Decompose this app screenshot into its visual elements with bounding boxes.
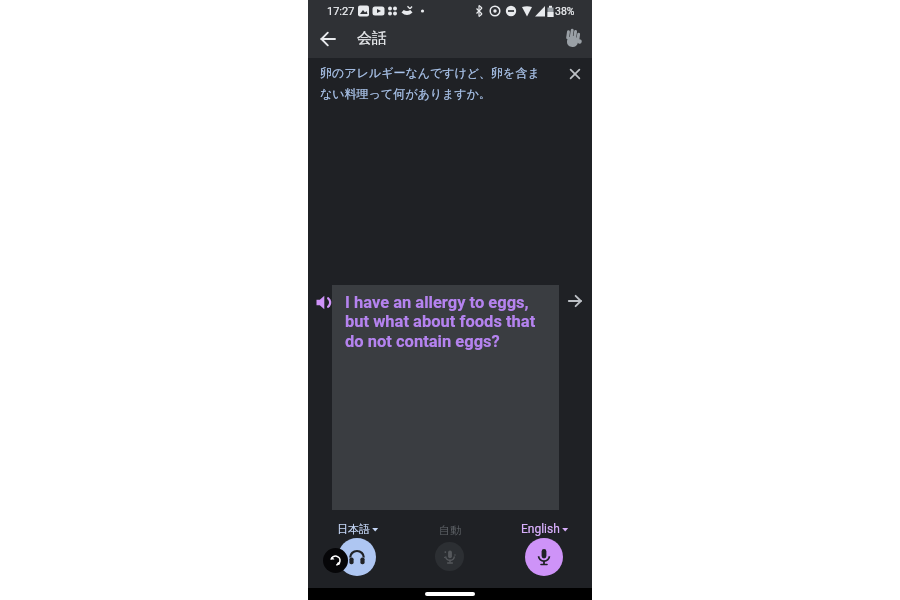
- button[interactable]: 日本語: [336, 521, 380, 537]
- staticText: 会話: [357, 29, 387, 48]
- button[interactable]: [316, 294, 333, 311]
- button[interactable]: [435, 542, 464, 571]
- staticText: I have an allergy to eggs, but what abou…: [345, 293, 536, 351]
- button[interactable]: [562, 27, 584, 49]
- button[interactable]: [318, 29, 338, 49]
- button[interactable]: [323, 548, 348, 573]
- staticText: English: [521, 522, 560, 536]
- button[interactable]: [338, 538, 376, 576]
- staticText: 卵のアレルギーなんですけど、卵を含ま ない料理って何がありますか。: [320, 65, 540, 102]
- button[interactable]: 自動: [436, 522, 464, 537]
- button[interactable]: [525, 538, 563, 576]
- staticText: 日本語: [337, 522, 370, 536]
- staticText: 自動: [439, 523, 461, 537]
- button[interactable]: [566, 292, 584, 310]
- staticText: 38%: [555, 5, 575, 17]
- staticText: 17:27: [327, 5, 355, 18]
- button[interactable]: English: [520, 521, 570, 537]
- button[interactable]: [566, 65, 584, 83]
